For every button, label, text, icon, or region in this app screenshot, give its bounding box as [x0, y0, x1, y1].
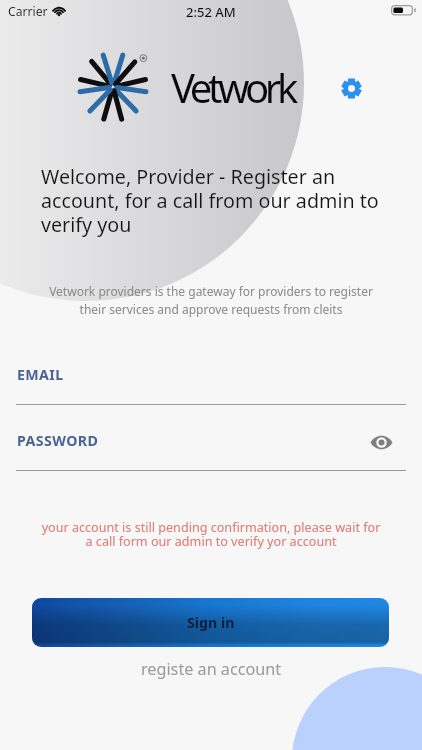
- staticText: 2:52 AM: [186, 3, 236, 21]
- button[interactable]: registe an account: [120, 655, 302, 683]
- staticText: PASSWORD: [17, 431, 99, 450]
- button[interactable]: Settings: [330, 67, 372, 109]
- staticText: Vetwork providers is the gateway for pro…: [44, 283, 378, 318]
- staticText: your account is still pending confirmati…: [38, 519, 384, 549]
- staticText: Welcome, Provider - Register an account,…: [41, 163, 391, 238]
- staticText: Sign in: [187, 613, 235, 632]
- staticText: Vetwork: [171, 60, 294, 114]
- staticText: Carrier: [8, 3, 48, 20]
- staticText: EMAIL: [17, 365, 64, 384]
- button[interactable]: Show password: [364, 429, 398, 455]
- staticText: registe an account: [141, 658, 282, 680]
- button[interactable]: Sign in: [32, 598, 389, 647]
